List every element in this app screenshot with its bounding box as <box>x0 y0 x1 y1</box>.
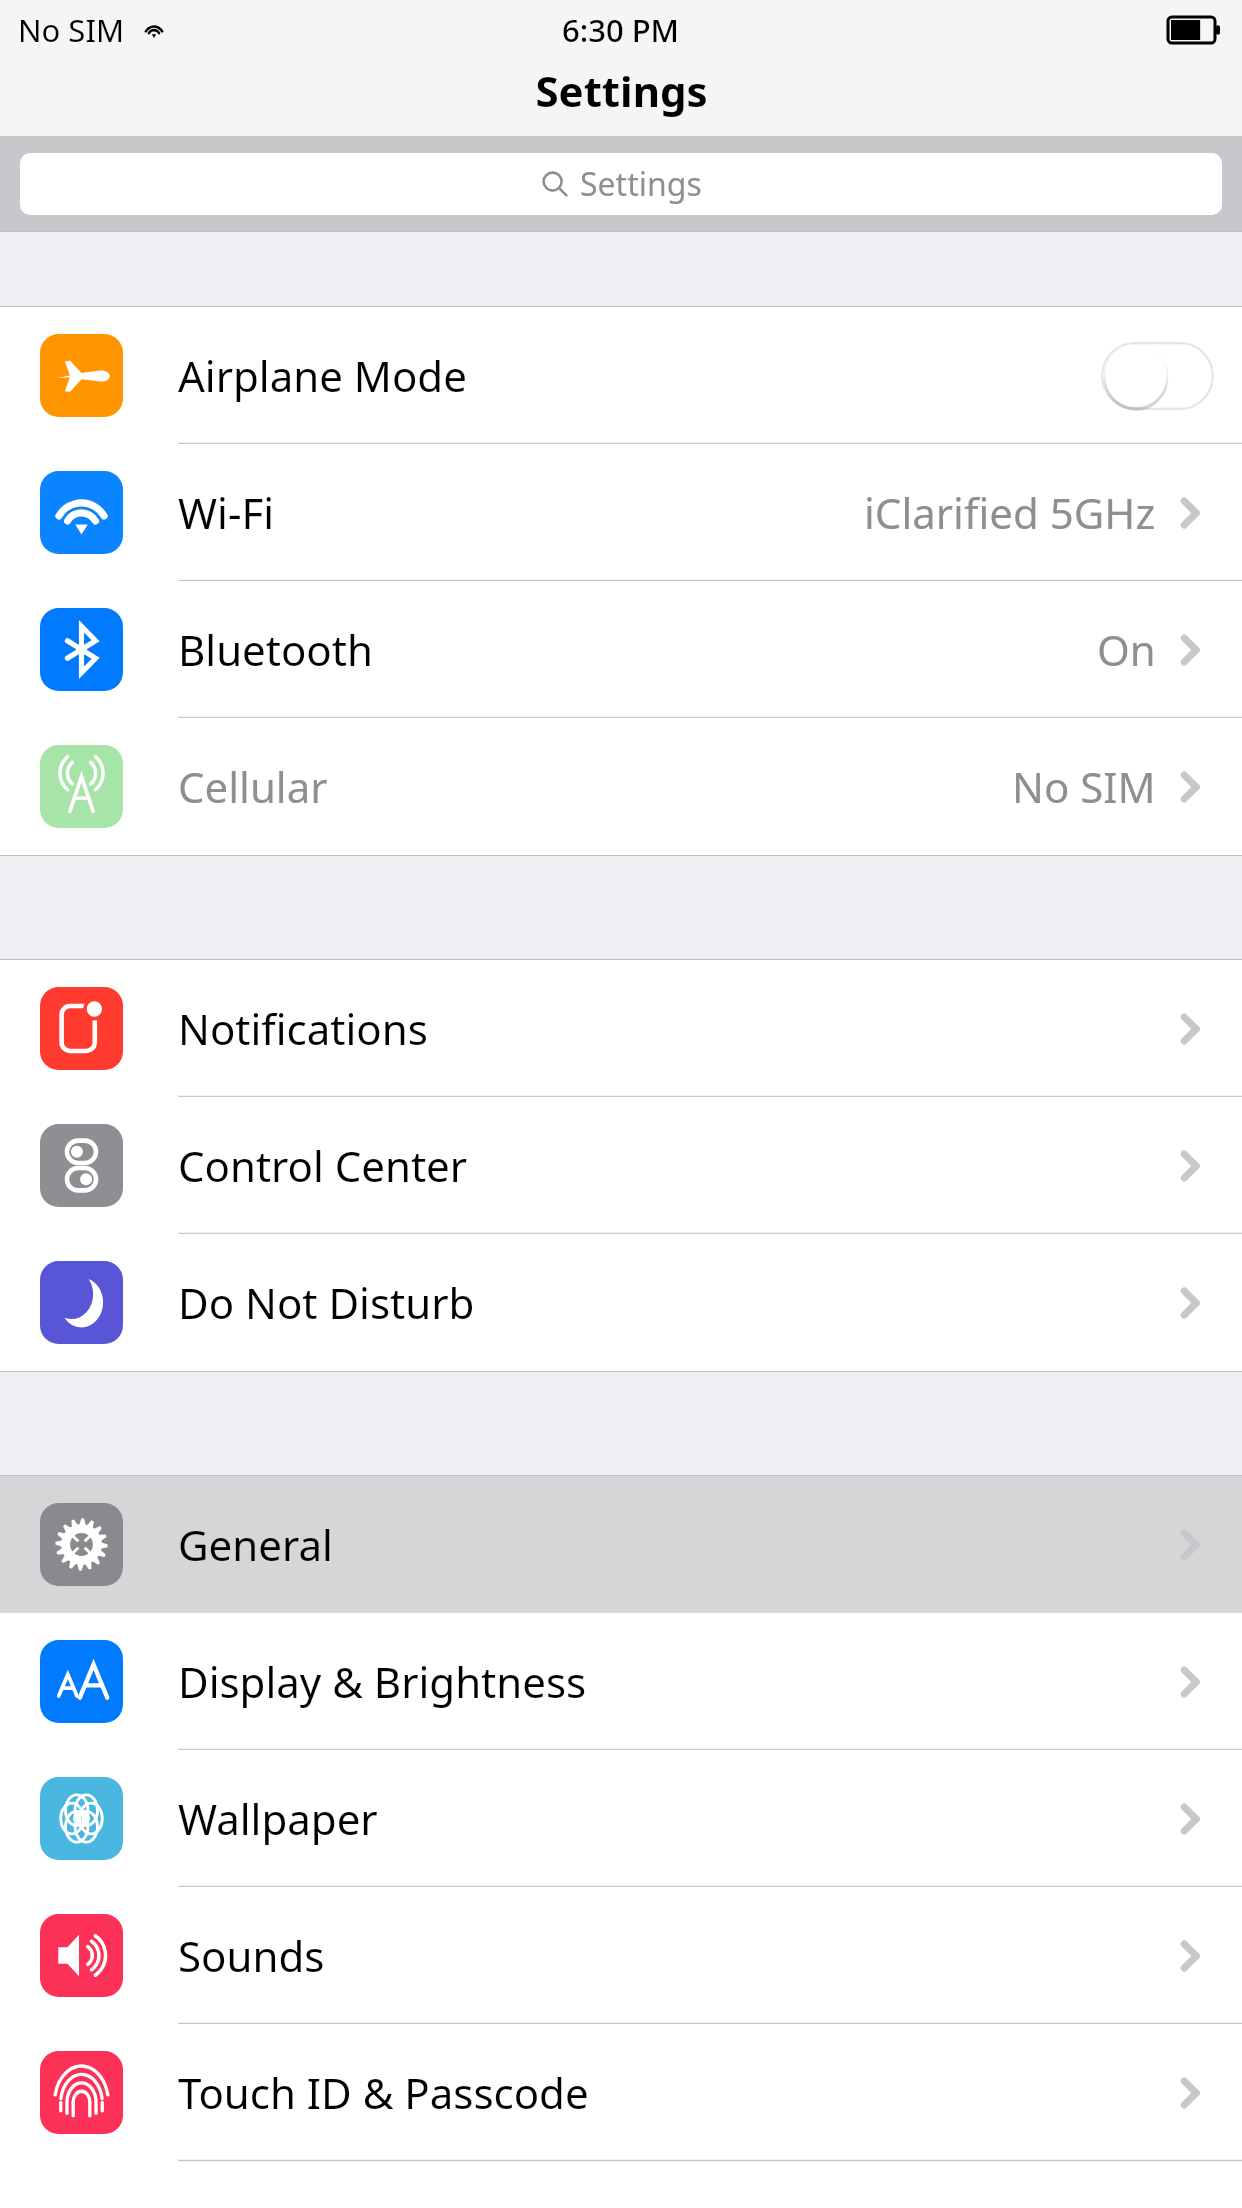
button[interactable]: Sounds <box>0 1887 1242 2024</box>
button[interactable]: Display & Brightness <box>0 1613 1242 1750</box>
staticText: Notifications <box>178 1000 428 1057</box>
button[interactable]: Wi-Fi <box>0 444 1242 581</box>
button[interactable]: Control Center <box>0 1097 1242 1234</box>
button[interactable]: Airplane Mode toggle <box>1101 342 1214 410</box>
staticText: Wallpaper <box>178 1790 378 1847</box>
staticText: Airplane Mode <box>178 347 467 404</box>
button[interactable]: Touch ID & Passcode <box>0 2024 1242 2161</box>
staticText: General <box>178 1516 333 1573</box>
button[interactable]: Bluetooth <box>0 581 1242 718</box>
button[interactable]: Settings <box>20 153 1222 215</box>
staticText: iClarified 5GHz <box>864 484 1156 541</box>
button[interactable]: Notifications <box>0 960 1242 1097</box>
staticText: Do Not Disturb <box>178 1274 475 1331</box>
button[interactable]: Do Not Disturb <box>0 1234 1242 1371</box>
staticText: Settings <box>580 162 702 206</box>
staticText: 6:30 PM <box>562 9 680 51</box>
button[interactable]: Cellular <box>0 718 1242 855</box>
staticText: On <box>1097 621 1156 678</box>
staticText: Sounds <box>178 1927 325 1984</box>
staticText: No SIM <box>1012 758 1156 815</box>
button[interactable]: Airplane Mode <box>0 307 1242 444</box>
staticText: Cellular <box>178 758 328 815</box>
staticText: Display & Brightness <box>178 1653 587 1710</box>
staticText: Settings <box>535 62 708 119</box>
staticText: Wi-Fi <box>178 484 275 541</box>
button[interactable]: General <box>0 1476 1242 1613</box>
staticText: Bluetooth <box>178 621 373 678</box>
staticText: Touch ID & Passcode <box>178 2064 589 2121</box>
staticText: No SIM <box>18 9 125 51</box>
staticText: Control Center <box>178 1137 468 1194</box>
button[interactable]: Wallpaper <box>0 1750 1242 1887</box>
